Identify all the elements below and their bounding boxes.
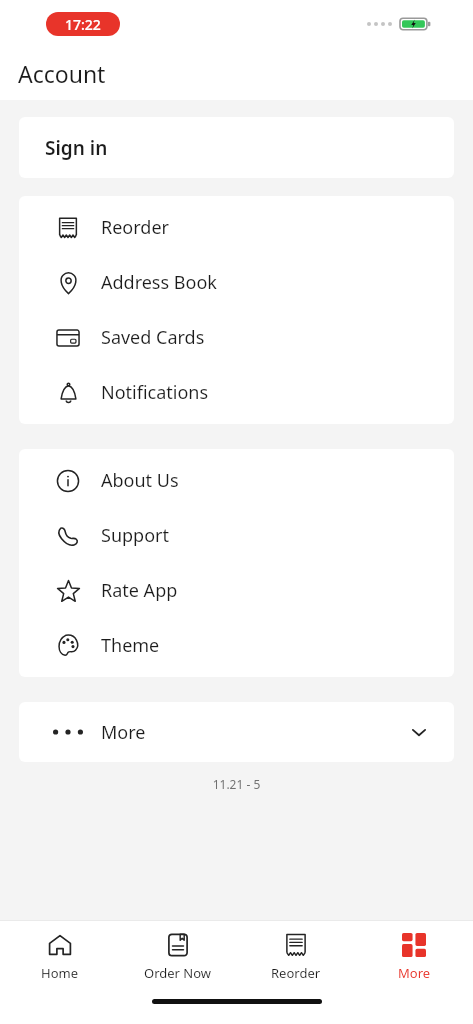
staticText: Order Now: [144, 964, 212, 982]
staticText: 17:22: [65, 15, 101, 34]
staticText: Reorder: [271, 964, 321, 982]
button[interactable]: Notifications: [19, 365, 454, 420]
button[interactable]: Support: [19, 508, 454, 563]
button[interactable]: Order Now: [119, 921, 237, 991]
staticText: About Us: [101, 468, 179, 493]
staticText: More: [398, 964, 431, 982]
button[interactable]: Home: [0, 921, 119, 991]
staticText: Account: [18, 58, 106, 89]
button[interactable]: More: [19, 702, 454, 762]
staticText: Saved Cards: [101, 325, 205, 350]
staticText: 11.21 - 5: [0, 776, 473, 792]
staticText: Support: [101, 523, 169, 548]
staticText: Home: [41, 964, 78, 982]
button[interactable]: More: [355, 921, 473, 991]
staticText: Rate App: [101, 578, 178, 603]
button[interactable]: Address Book: [19, 255, 454, 310]
staticText: Reorder: [101, 215, 169, 240]
button[interactable]: Reorder: [237, 921, 355, 991]
button[interactable]: Theme: [19, 618, 454, 673]
staticText: Notifications: [101, 380, 209, 405]
button[interactable]: Reorder: [19, 200, 454, 255]
button[interactable]: Rate App: [19, 563, 454, 618]
button[interactable]: About Us: [19, 453, 454, 508]
button[interactable]: Sign in: [19, 117, 454, 178]
staticText: Theme: [101, 633, 160, 658]
staticText: Address Book: [101, 270, 217, 295]
button[interactable]: Saved Cards: [19, 310, 454, 365]
staticText: More: [101, 720, 146, 745]
staticText: Sign in: [45, 135, 108, 161]
